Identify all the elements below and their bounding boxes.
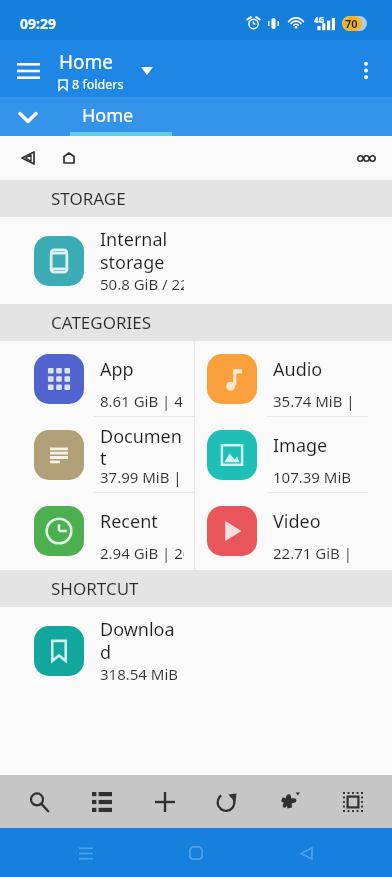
button[interactable]: Internal storage xyxy=(0,217,392,304)
button[interactable]: Document xyxy=(22,417,195,493)
staticText: 09:29 xyxy=(20,14,56,33)
button[interactable]: Downloa d xyxy=(0,607,392,694)
staticText: 22.71 GiB | 1 xyxy=(273,543,357,563)
staticText: CATEGORIES xyxy=(51,311,152,334)
staticText: 2.94 GiB | 26 xyxy=(100,543,184,563)
button[interactable]: Overflow xyxy=(348,140,384,176)
button[interactable]: Expand xyxy=(131,55,163,87)
button[interactable]: Refresh xyxy=(203,778,251,826)
staticText: Recent xyxy=(100,509,158,534)
staticText: 318.54 MiB | xyxy=(100,664,184,684)
staticText: 8.61 GiB | 41 xyxy=(100,391,184,411)
button[interactable]: Image xyxy=(195,417,368,493)
button[interactable]: Plugins xyxy=(266,778,314,826)
staticText: App xyxy=(100,357,134,382)
button[interactable]: App xyxy=(22,341,195,417)
button[interactable]: Menu xyxy=(6,46,51,91)
button[interactable]: Home xyxy=(172,829,220,877)
staticText: Image xyxy=(273,433,328,458)
button[interactable]: Home xyxy=(57,97,159,136)
button[interactable]: More options xyxy=(344,48,388,92)
staticText: 35.74 MiB | 4 xyxy=(273,391,357,411)
staticText: Downloa d xyxy=(100,617,175,664)
staticText: 37.99 MiB | 4 xyxy=(100,467,184,487)
staticText: Document xyxy=(100,424,184,467)
staticText: Audio xyxy=(273,357,323,382)
button[interactable]: Select all xyxy=(329,778,377,826)
button[interactable]: Back xyxy=(282,829,330,877)
staticText: 50.8 GiB / 22 xyxy=(100,274,184,294)
button[interactable]: Change view xyxy=(78,778,126,826)
staticText: Home xyxy=(82,103,134,128)
staticText: 70 xyxy=(345,16,358,31)
staticText: 4G xyxy=(314,14,325,25)
button[interactable]: Recent xyxy=(22,493,195,569)
button[interactable]: Audio xyxy=(195,341,368,417)
staticText: SHORTCUT xyxy=(51,577,139,600)
button[interactable]: New xyxy=(141,778,189,826)
staticText: STORAGE xyxy=(51,187,126,210)
staticText: Video xyxy=(273,509,321,534)
button[interactable]: Video xyxy=(195,493,368,569)
button[interactable]: Back xyxy=(8,138,48,178)
staticText: 107.39 MiB | xyxy=(273,467,357,487)
staticText: 8 folders xyxy=(72,76,124,93)
staticText: Internal storage xyxy=(100,227,168,274)
button[interactable]: Search xyxy=(15,778,63,826)
button[interactable]: Recent apps xyxy=(62,829,110,877)
button[interactable]: Show tab list xyxy=(8,97,48,136)
button[interactable]: Home folder xyxy=(49,138,89,178)
staticText: Home xyxy=(59,49,114,75)
